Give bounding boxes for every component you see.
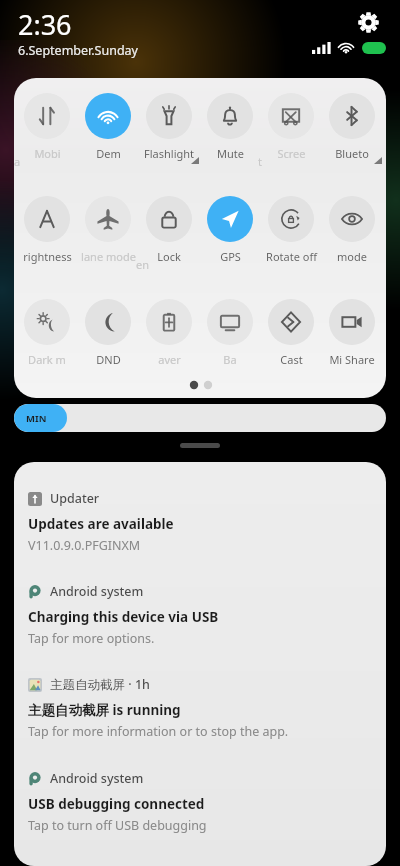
button[interactable]: Cast	[263, 291, 319, 387]
button[interactable]: Ba	[202, 291, 258, 387]
staticText: 主题自动截屏 is running	[28, 701, 181, 719]
button[interactable]: Android system	[14, 770, 386, 858]
button[interactable]: Updater	[14, 490, 386, 578]
staticText: Android system	[50, 770, 144, 787]
staticText: Updater	[50, 490, 100, 507]
staticText: Ba	[223, 352, 237, 367]
staticText: en	[136, 257, 150, 272]
button[interactable]: Dark m	[19, 291, 75, 387]
staticText: GPS	[220, 249, 241, 264]
button[interactable]: Android system	[14, 583, 386, 671]
staticText: V11.0.9.0.PFGINXM	[28, 537, 141, 554]
staticText: 2:36	[18, 6, 72, 43]
button[interactable]: Settings	[352, 6, 384, 38]
button[interactable]: lane mode	[80, 188, 136, 284]
button[interactable]: DND	[80, 291, 136, 387]
staticText: rightness	[23, 249, 72, 264]
button[interactable]: rightness	[19, 188, 75, 284]
button[interactable]: mode	[324, 188, 380, 284]
button[interactable]: Collapse panel	[180, 443, 220, 448]
button[interactable]: MIN	[14, 404, 386, 432]
button[interactable]: Flashlight	[141, 85, 197, 181]
button[interactable]: Rotate off	[263, 188, 319, 284]
staticText: Tap for more options.	[28, 630, 155, 647]
staticText: lane mode	[81, 249, 136, 264]
staticText: Rotate off	[266, 249, 317, 264]
staticText: Lock	[157, 249, 181, 264]
staticText: Blueto	[335, 146, 369, 161]
staticText: Updates are available	[28, 515, 174, 533]
staticText: aver	[158, 352, 181, 367]
staticText: USB debugging connected	[28, 795, 205, 813]
button[interactable]: Mute	[202, 85, 258, 181]
staticText: 主题自动截屏 · 1h	[50, 676, 150, 693]
staticText: Charging this device via USB	[28, 608, 219, 626]
staticText: Dem	[96, 146, 121, 161]
staticText: MIN	[26, 412, 47, 425]
staticText: Dark m	[28, 352, 66, 367]
staticText: DND	[96, 352, 121, 367]
button[interactable]: Scree	[263, 85, 319, 181]
button[interactable]: GPS	[202, 188, 258, 284]
staticText: Tap for more information or to stop the …	[28, 723, 289, 740]
staticText: Android system	[50, 583, 144, 600]
staticText: 6.September.Sunday	[18, 42, 138, 59]
staticText: Tap to turn off USB debugging	[28, 817, 207, 834]
button[interactable]: Mi Share	[324, 291, 380, 387]
staticText: Mute	[217, 146, 244, 161]
staticText: Scree	[277, 146, 306, 161]
staticText: a	[14, 154, 21, 169]
staticText: Flashlight	[144, 146, 194, 161]
button[interactable]: 主题自动截屏 · 1h	[14, 676, 386, 764]
staticText: Mi Share	[329, 352, 375, 367]
button[interactable]: aver	[141, 291, 197, 387]
staticText: t	[258, 154, 262, 169]
button[interactable]: Blueto	[324, 85, 380, 181]
button[interactable]: Dem	[80, 85, 136, 181]
button[interactable]: Mobi	[19, 85, 75, 181]
staticText: Cast	[280, 352, 303, 367]
staticText: Mobi	[34, 146, 61, 161]
button[interactable]: Lock	[141, 188, 197, 284]
staticText: mode	[337, 249, 367, 264]
